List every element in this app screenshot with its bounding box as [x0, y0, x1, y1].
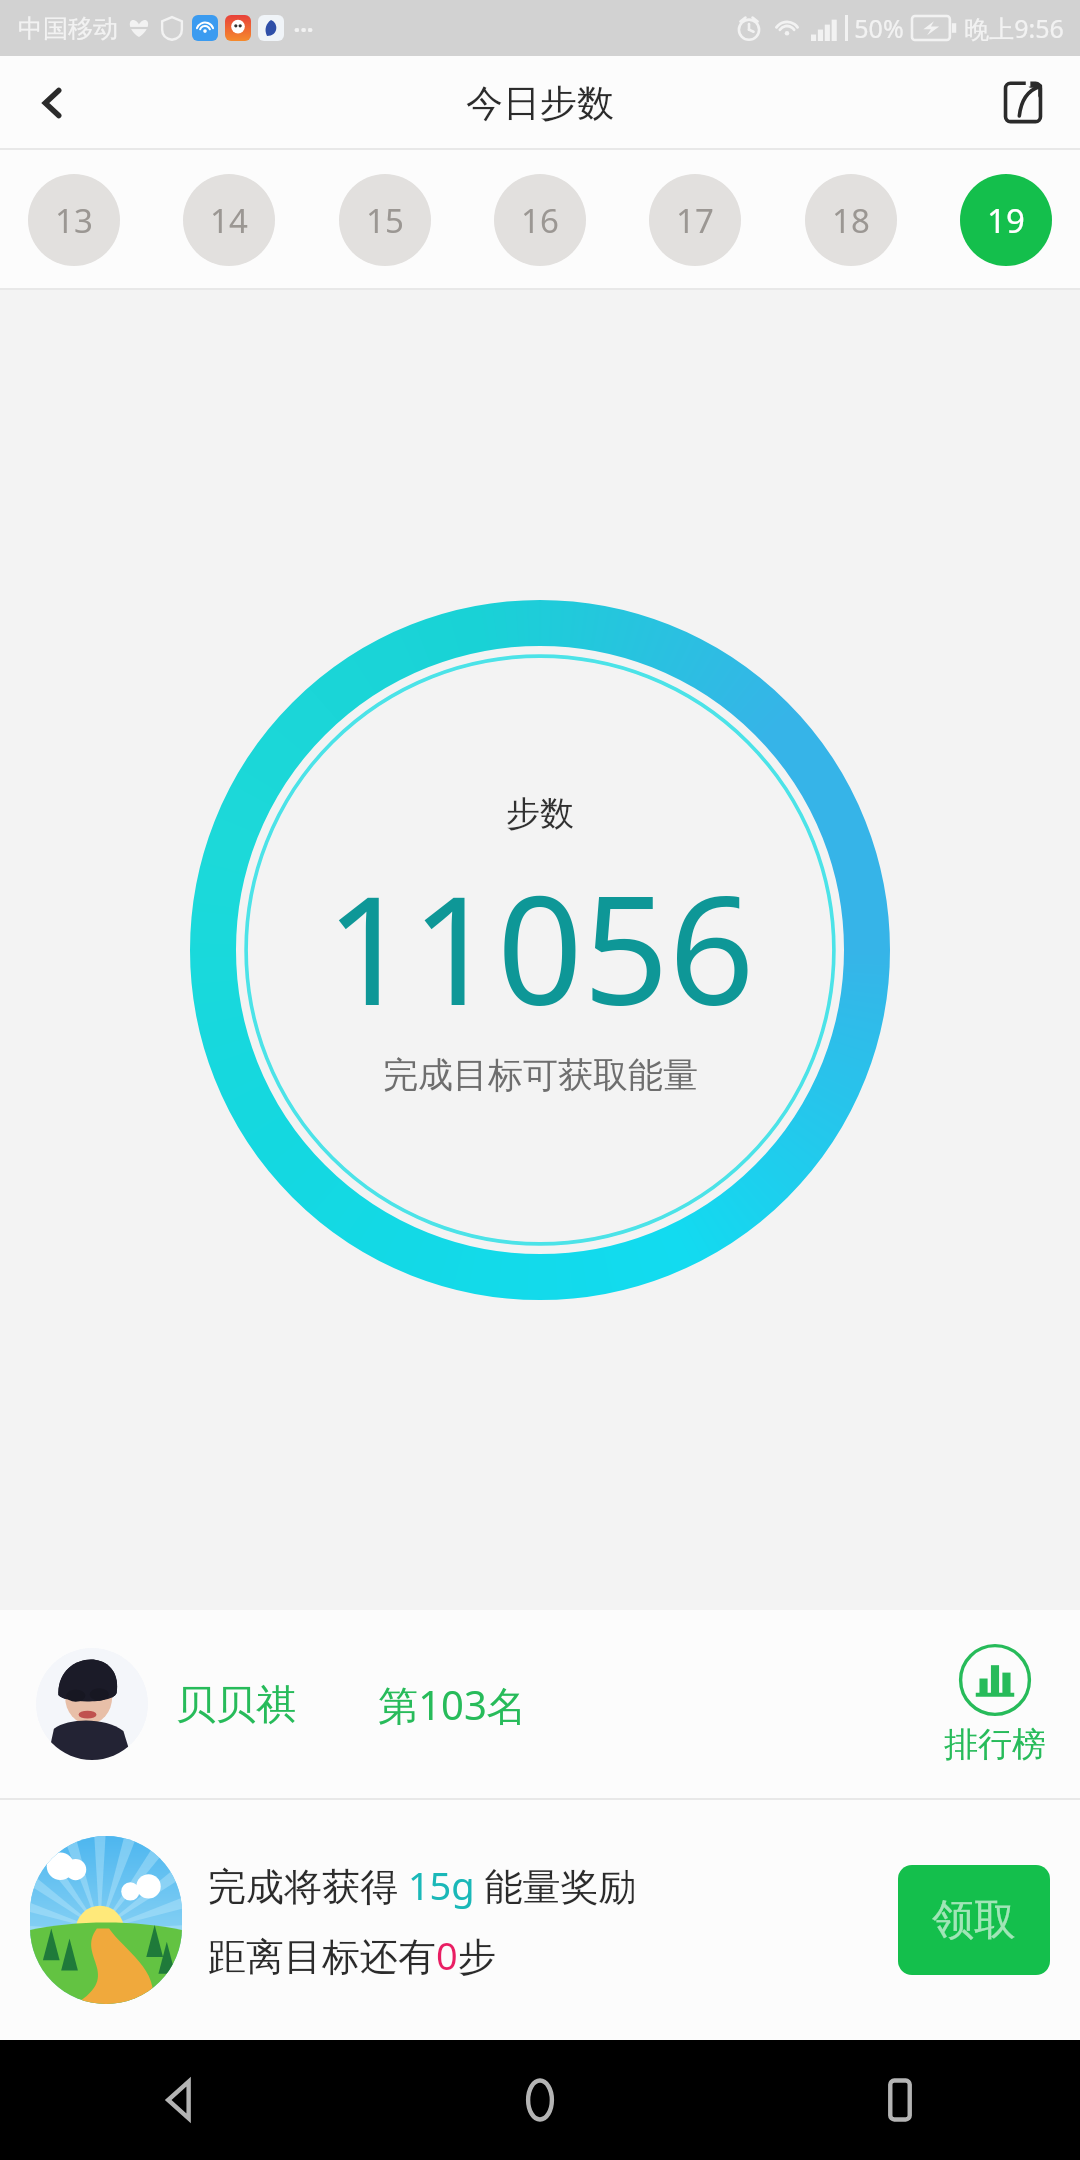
button[interactable]: 贝贝祺	[0, 1610, 1080, 1798]
staticText: 完成目标可获取能量	[383, 1053, 698, 1097]
staticText: 晚上9:56	[964, 11, 1064, 45]
staticText: 贝贝祺	[176, 1679, 296, 1729]
staticText: 完成将获得 15g 能量奖励	[208, 1859, 637, 1911]
staticText: 今日步数	[466, 80, 614, 127]
staticText: 17	[676, 198, 714, 243]
button[interactable]: 19	[960, 174, 1052, 266]
staticText: 11056	[325, 845, 755, 1049]
button[interactable]: Back	[16, 67, 88, 139]
staticText: 13	[55, 198, 93, 243]
staticText: 中国移动	[18, 13, 118, 44]
staticText: 领取	[932, 1894, 1016, 1947]
button[interactable]: 16	[494, 174, 586, 266]
staticText: 16	[521, 198, 559, 243]
button[interactable]: Back	[0, 2040, 360, 2160]
button[interactable]: 14	[183, 174, 275, 266]
button[interactable]: 15	[339, 174, 431, 266]
staticText: 步数	[506, 792, 574, 835]
staticText: 50%	[854, 11, 904, 45]
button[interactable]: 17	[649, 174, 741, 266]
staticText: 18	[832, 198, 870, 243]
button[interactable]: Share	[986, 66, 1060, 140]
button[interactable]: 领取	[898, 1865, 1050, 1975]
staticText: 19	[987, 198, 1025, 243]
button[interactable]: 13	[28, 174, 120, 266]
button[interactable]: Home	[360, 2040, 720, 2160]
staticText: 第103名	[378, 1677, 527, 1732]
button[interactable]: 排行榜	[934, 1637, 1056, 1772]
staticText: 距离目标还有0步	[208, 1929, 496, 1981]
staticText: 14	[210, 198, 248, 243]
button[interactable]: 18	[805, 174, 897, 266]
button[interactable]: Recents	[720, 2040, 1080, 2160]
staticText: ···	[293, 12, 314, 45]
staticText: 15	[366, 198, 404, 243]
staticText: 排行榜	[944, 1723, 1046, 1766]
